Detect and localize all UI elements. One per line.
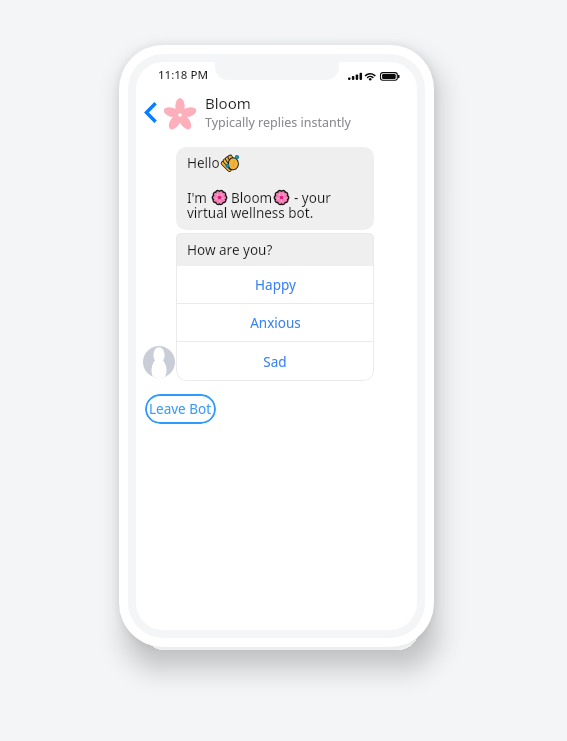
staticText: Bloom [205, 93, 251, 113]
staticText: 11:18 PM [158, 67, 209, 83]
button[interactable]: Sad [176, 342, 374, 381]
staticText: Bloom [231, 189, 273, 207]
staticText: Happy [255, 276, 296, 294]
staticText: Anxious [250, 314, 301, 332]
button[interactable]: Back [139, 95, 163, 129]
staticText: Leave Bot [149, 400, 212, 418]
staticText: Typically replies instantly [205, 114, 351, 131]
button[interactable]: Happy [176, 266, 374, 304]
button[interactable]: Anxious [176, 304, 374, 342]
staticText: How are you? [187, 241, 273, 259]
staticText: virtual wellness bot. [187, 204, 314, 222]
button[interactable]: Leave Bot [145, 394, 216, 424]
staticText: Hello [187, 154, 224, 172]
staticText: - your [294, 189, 331, 207]
staticText: Sad [263, 353, 287, 371]
staticText: I'm [187, 189, 207, 207]
